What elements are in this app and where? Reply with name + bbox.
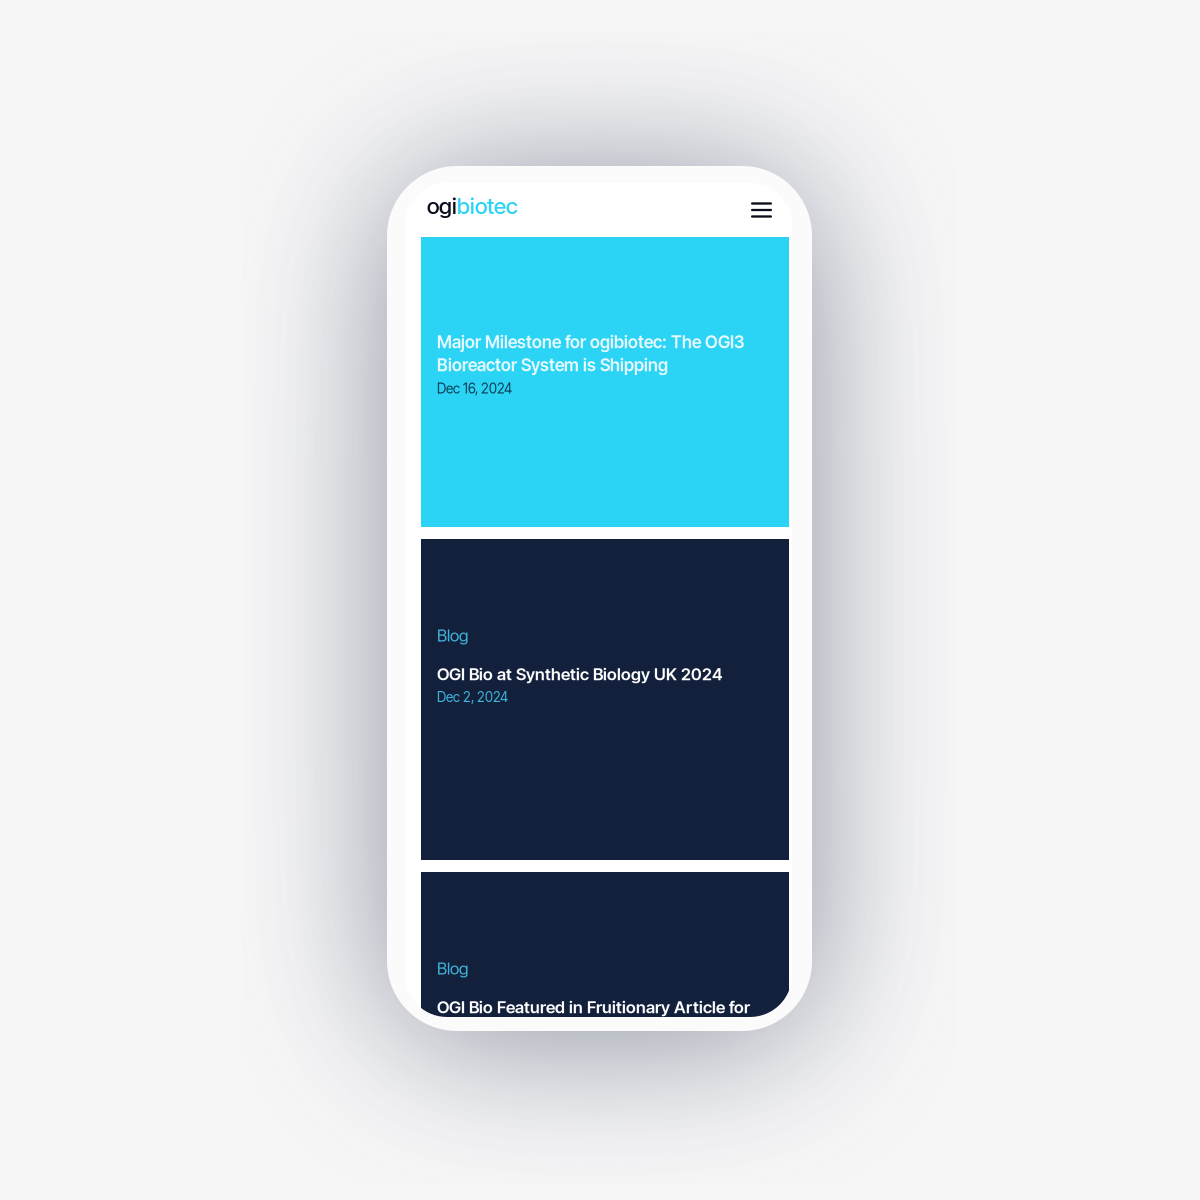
- staticText: biotec: [457, 192, 518, 219]
- button[interactable]: Blog: [421, 539, 789, 860]
- button[interactable]: Open menu: [751, 202, 772, 217]
- staticText: Blog: [437, 958, 468, 978]
- staticText: Blog: [437, 625, 468, 645]
- staticText: ogi: [427, 192, 457, 219]
- staticText: Bioreactor System is Shipping: [437, 355, 668, 375]
- staticText: OGI Bio at Synthetic Biology UK 2024: [437, 664, 723, 684]
- staticText: Major Milestone for ogibiotec: The OGI3: [437, 332, 744, 352]
- staticText: Dec 2, 2024: [437, 689, 508, 705]
- button[interactable]: Major Milestone for ogibiotec: The OGI3: [421, 237, 789, 527]
- staticText: Nov 28, 2024: [437, 1022, 516, 1038]
- button[interactable]: Blog: [421, 872, 789, 1193]
- button[interactable]: ogi: [427, 196, 518, 223]
- staticText: OGI Bio Featured in Fruitionary Article …: [437, 997, 750, 1017]
- staticText: Dec 16, 2024: [437, 380, 512, 397]
